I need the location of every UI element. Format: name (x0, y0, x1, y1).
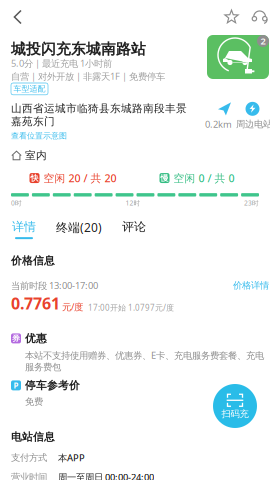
staticText: 终端(20) (56, 219, 102, 235)
button[interactable]: 详情 (9, 219, 39, 239)
staticText: 2 (260, 35, 265, 47)
staticText: 室内 (25, 149, 47, 162)
staticText: 车型适配 (13, 84, 45, 94)
staticText: 优惠 (25, 332, 47, 345)
staticText: 0.7761 (11, 293, 60, 314)
staticText: 慢 (160, 173, 168, 183)
staticText: P (13, 380, 18, 391)
staticText: 价格信息 (11, 254, 55, 267)
staticText: 城投闪充东城南路站 (11, 40, 146, 58)
staticText: 空闲 0 / 共 0 (173, 171, 234, 185)
staticText: 0时 (11, 198, 22, 207)
staticText: 山西省运城市临猗县东城路南段丰景嘉苑东门 (11, 102, 187, 128)
button[interactable]: 车型适配 (11, 83, 48, 95)
button[interactable]: 终端(20) (39, 219, 105, 235)
staticText: 支付方式 (11, 452, 47, 463)
staticText: 停车参考价 (25, 379, 80, 392)
staticText: 空闲 20 / 共 20 (43, 171, 116, 185)
staticText: 23时 (244, 198, 259, 207)
staticText: 0.2km (205, 118, 232, 130)
button[interactable]: 扫码充 (213, 384, 257, 428)
staticText: 元/度 (62, 300, 83, 313)
staticText: 营业时间 (11, 471, 47, 480)
staticText: 12时 (125, 198, 140, 207)
staticText: 扫码充 (221, 408, 248, 420)
staticText: 5.0分 | 最近充电 1小时前 (11, 57, 112, 69)
staticText: 详情 (12, 219, 36, 234)
staticText: 价格详情 (233, 280, 269, 291)
staticText: 免费 (25, 396, 43, 407)
button[interactable]: 查看位置示意图 (11, 131, 67, 141)
staticText: 查看位置示意图 (11, 131, 67, 141)
button[interactable]: 价格详情 (233, 280, 269, 291)
staticText: 券 (12, 333, 20, 343)
button[interactable]: 客服 (245, 3, 270, 30)
staticText: 周边电站 (236, 118, 270, 130)
staticText: 自营 | 对外开放 | 非露天1F | 免费停车 (11, 70, 165, 82)
button[interactable]: 收藏 (218, 3, 245, 30)
staticText: 当前时段 13:00-17:00 (11, 279, 98, 292)
staticText: 本站不支持使用赠券、优惠券、E卡、充电服务费套餐、充电服务费包 (25, 349, 264, 373)
staticText: 本APP (58, 451, 85, 464)
staticText: 电站信息 (11, 430, 55, 443)
button[interactable]: 评论 (105, 219, 149, 234)
staticText: 17:00开始 1.0797元/度 (88, 302, 174, 313)
button[interactable]: 返回 (0, 3, 31, 30)
staticText: 快 (30, 173, 38, 183)
staticText: 评论 (122, 219, 146, 234)
staticText: 周一至周日 00:00-24:00 (58, 471, 154, 480)
